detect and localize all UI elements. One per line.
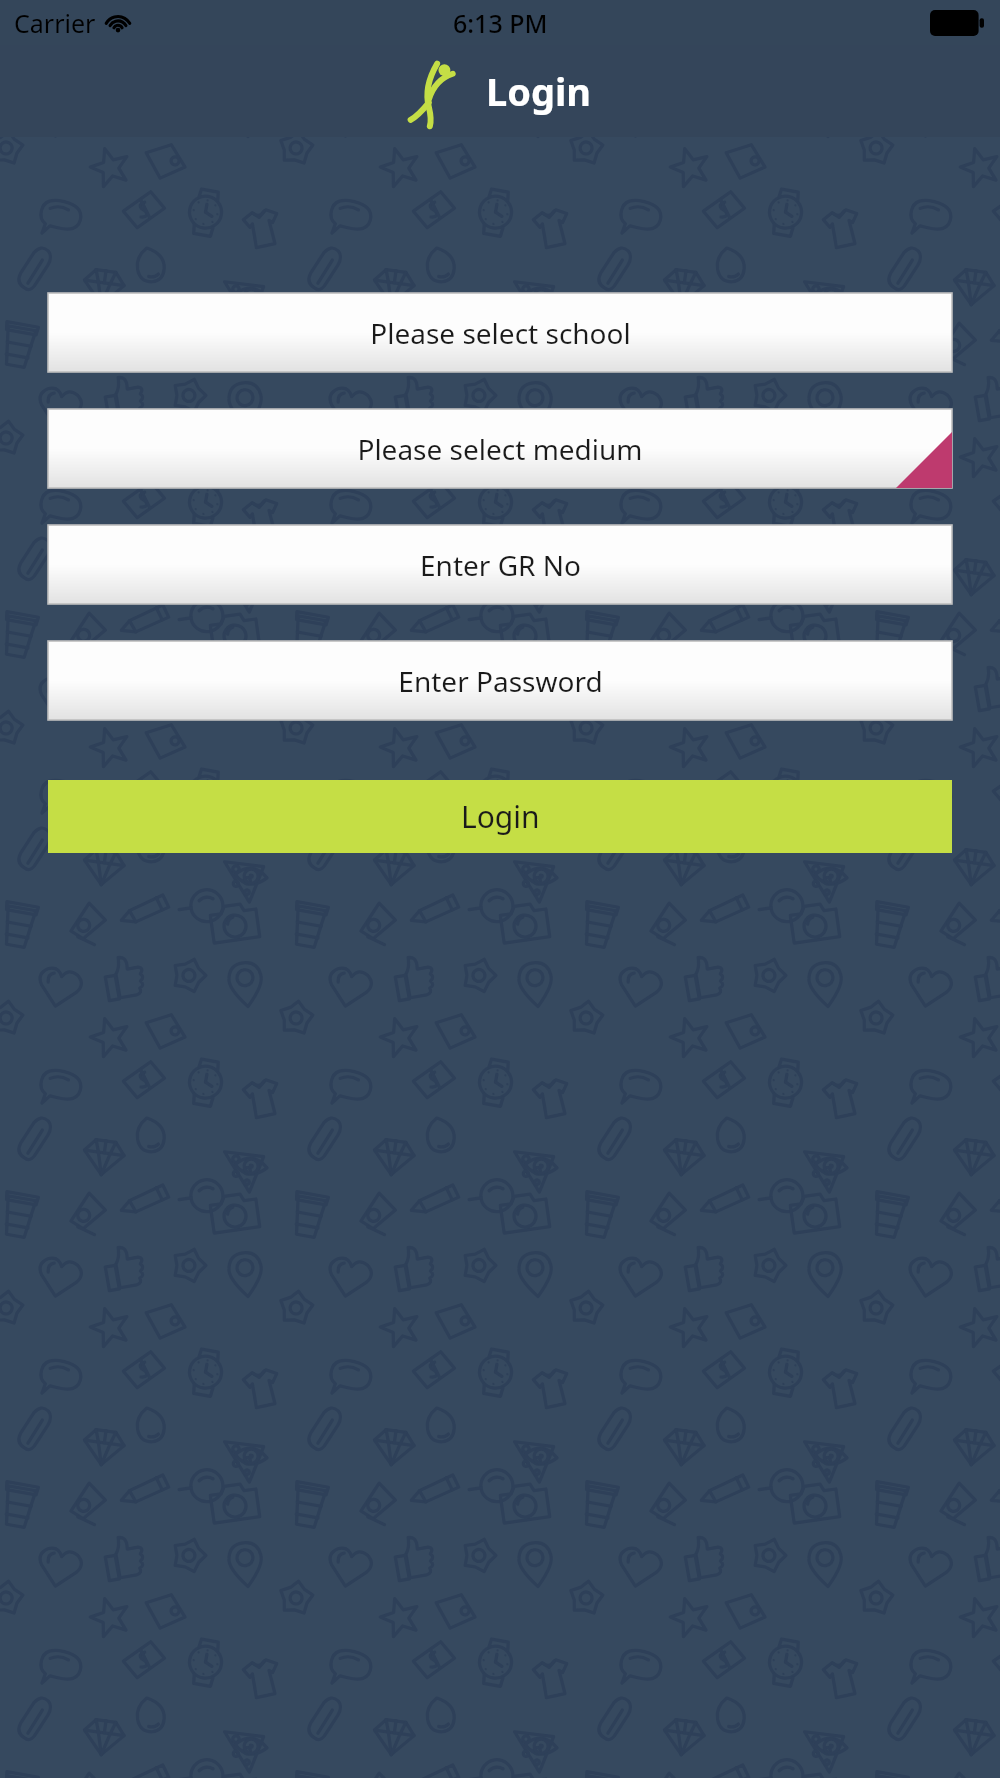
button[interactable]: Login — [48, 780, 952, 853]
button[interactable]: Enter Password — [48, 641, 952, 720]
staticText: Login — [461, 796, 540, 837]
button[interactable]: Enter GR No — [48, 525, 952, 604]
button[interactable]: Please select medium — [48, 409, 952, 488]
staticText: 6:13 PM — [453, 6, 548, 40]
staticText: Please select school — [370, 314, 631, 352]
staticText: Enter GR No — [420, 546, 581, 584]
staticText: Enter Password — [398, 662, 603, 700]
staticText: Carrier — [14, 6, 96, 40]
button[interactable]: Please select school — [48, 293, 952, 372]
staticText: Login — [486, 65, 592, 117]
staticText: Please select medium — [357, 430, 643, 468]
